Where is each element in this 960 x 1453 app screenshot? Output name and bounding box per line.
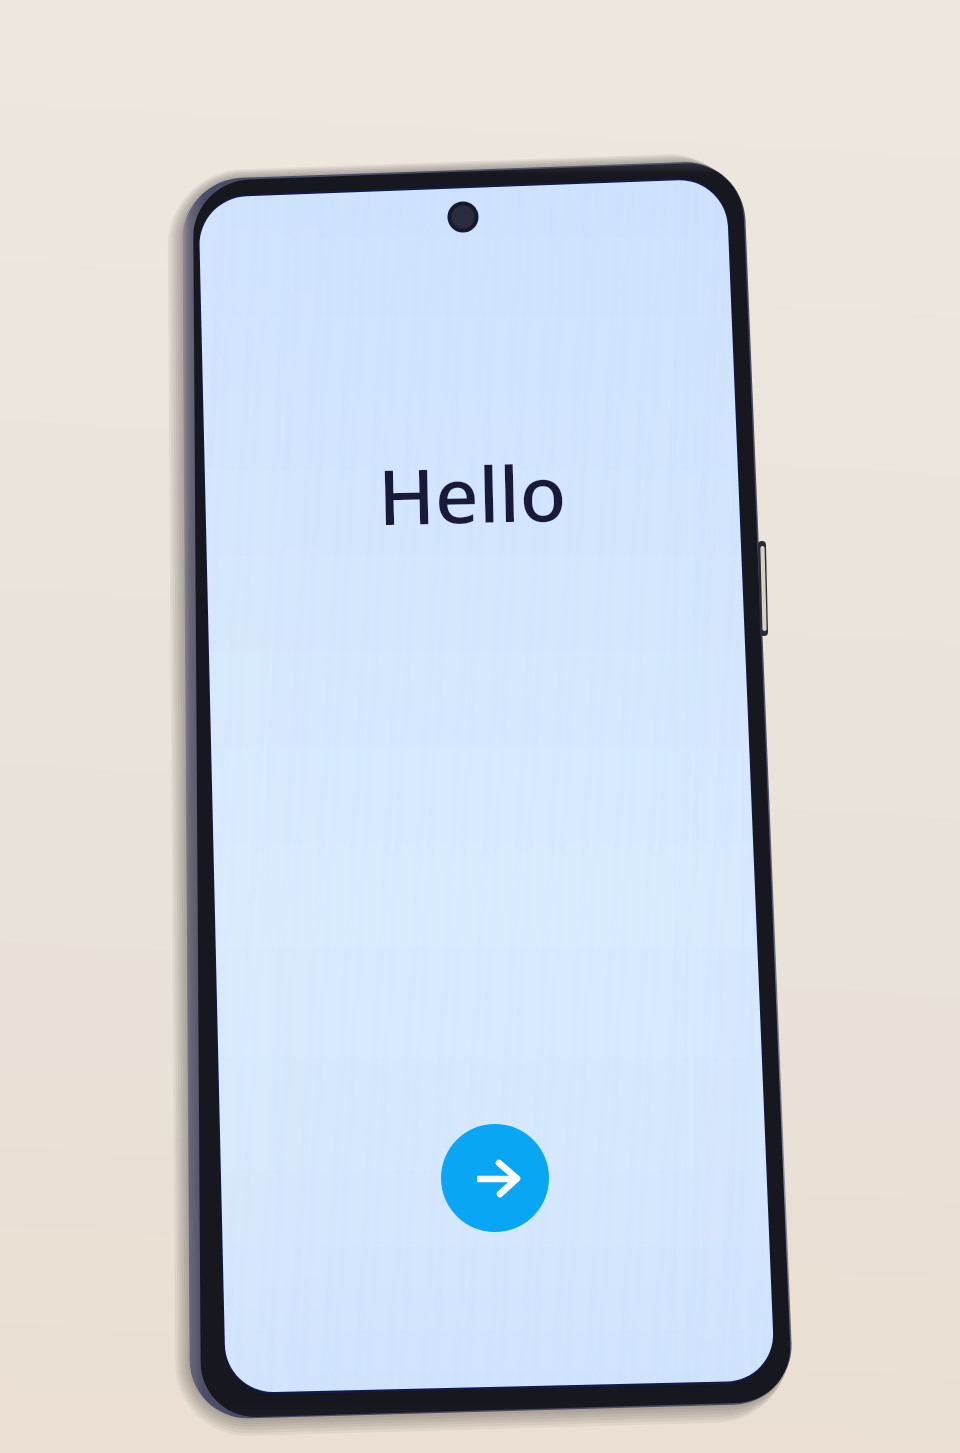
button[interactable]: Next (441, 1124, 550, 1233)
staticText: Hello (377, 440, 567, 548)
